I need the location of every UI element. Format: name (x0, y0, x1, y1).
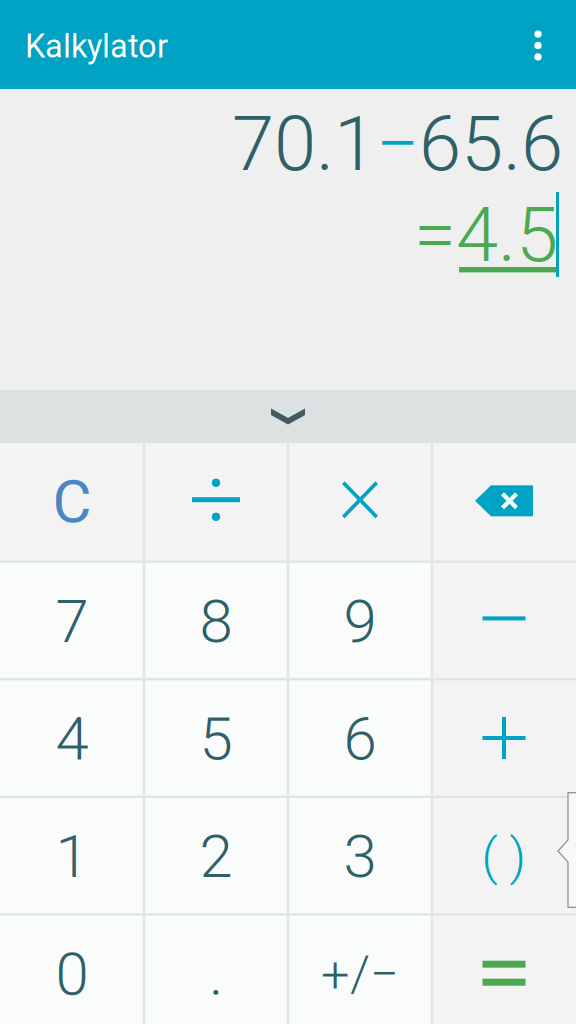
button[interactable]: 2 (144, 796, 288, 913)
staticText: 1 (55, 821, 88, 892)
button[interactable]: C (0, 443, 144, 561)
button[interactable]: Collapse display (0, 390, 576, 443)
staticText: − (376, 99, 419, 189)
button[interactable]: Equals (432, 913, 576, 1024)
staticText: 0 (55, 939, 88, 1009)
staticText: ( ) (481, 827, 526, 886)
staticText: +/− (321, 944, 399, 1004)
staticText: =4.5 (414, 190, 558, 280)
button[interactable]: ( ) (432, 796, 576, 913)
button[interactable]: 9 (288, 561, 432, 678)
button[interactable]: 4 (0, 678, 144, 796)
staticText: 9 (343, 586, 376, 656)
staticText: 5 (199, 704, 232, 774)
button[interactable]: 0 (0, 913, 144, 1024)
button[interactable]: +/− (288, 913, 432, 1024)
button[interactable]: 5 (144, 678, 288, 796)
button[interactable]: More options (514, 16, 562, 72)
staticText: 7 (55, 586, 88, 656)
staticText: 65.6 (419, 99, 563, 189)
staticText: 3 (343, 821, 376, 892)
button[interactable]: Plus (432, 678, 576, 796)
button[interactable]: 1 (0, 796, 144, 913)
button[interactable]: 8 (144, 561, 288, 678)
staticText: 4 (55, 704, 88, 774)
staticText: Kalkylator (25, 27, 168, 65)
staticText: 8 (199, 586, 232, 656)
button[interactable]: Divide (144, 443, 288, 561)
staticText: 2 (199, 821, 232, 892)
button[interactable]: Backspace (432, 443, 576, 561)
staticText: 70.1 (232, 99, 376, 189)
staticText: 6 (343, 704, 376, 774)
button[interactable]: . (144, 913, 288, 1024)
button[interactable]: Multiply (288, 443, 432, 561)
button[interactable]: Minus (432, 561, 576, 678)
button[interactable]: 6 (288, 678, 432, 796)
staticText: . (209, 939, 223, 1009)
button[interactable]: 3 (288, 796, 432, 913)
button[interactable]: 7 (0, 561, 144, 678)
staticText: C (52, 467, 91, 537)
